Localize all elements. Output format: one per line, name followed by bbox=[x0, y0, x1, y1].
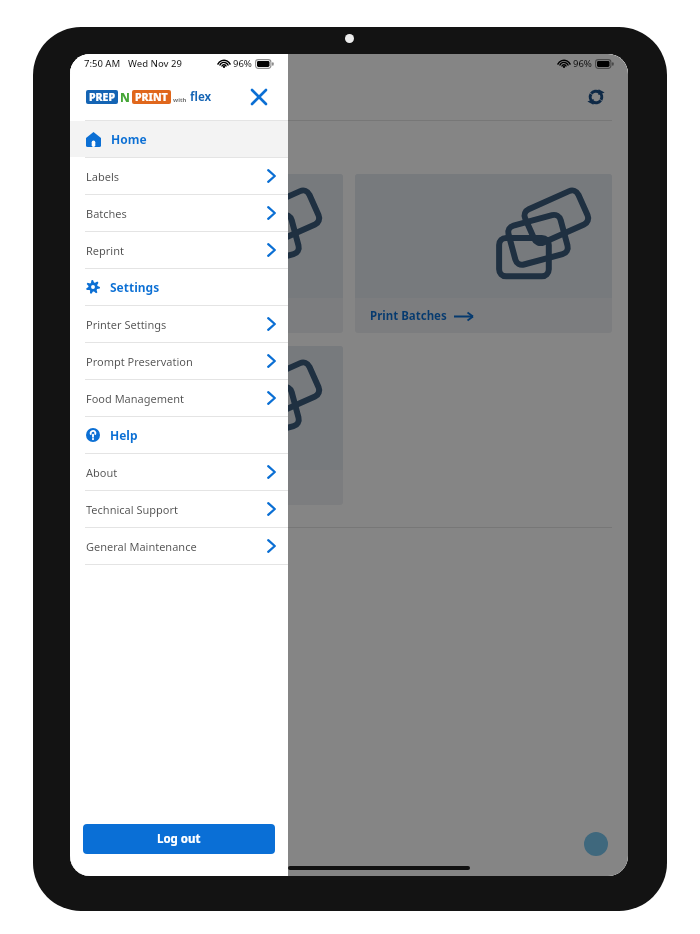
staticText: flex bbox=[190, 89, 212, 105]
staticText: N bbox=[120, 89, 130, 105]
staticText: Wed Nov 29 bbox=[128, 57, 182, 70]
staticText: Printer Settings bbox=[86, 317, 267, 332]
staticText: PREP bbox=[89, 90, 115, 104]
staticText: Reprint bbox=[86, 243, 267, 258]
button[interactable]: Prompt Preservation bbox=[70, 343, 288, 379]
button[interactable]: Printer Settings bbox=[70, 306, 288, 342]
staticText: Print Batches bbox=[370, 308, 447, 324]
button[interactable]: Refresh bbox=[580, 81, 612, 113]
staticText: Wed Nov 29 bbox=[128, 57, 182, 70]
button[interactable]: Labels bbox=[70, 158, 288, 194]
staticText: PREP bbox=[89, 90, 115, 104]
staticText: Log out bbox=[157, 831, 201, 847]
staticText: 96% bbox=[573, 57, 592, 70]
button[interactable]: Food Management bbox=[70, 380, 288, 416]
button[interactable]: Home bbox=[70, 121, 288, 157]
staticText: Labels bbox=[86, 169, 267, 184]
staticText: PRINT bbox=[135, 90, 168, 104]
staticText: Help bbox=[110, 427, 138, 443]
button[interactable]: Reprint bbox=[86, 346, 343, 505]
staticText: Batches bbox=[86, 206, 267, 221]
button[interactable]: Print Labels bbox=[86, 174, 343, 333]
button[interactable]: Help bbox=[70, 417, 288, 453]
button[interactable]: Reprint bbox=[70, 232, 288, 268]
staticText: flex bbox=[190, 89, 212, 105]
staticText: Reprint bbox=[101, 480, 144, 496]
staticText: About bbox=[86, 465, 267, 480]
staticText: Prompt Preservation bbox=[86, 354, 267, 369]
staticText: Home bbox=[111, 131, 147, 147]
button[interactable]: Close menu bbox=[244, 82, 274, 112]
button[interactable]: General Maintenance bbox=[70, 528, 288, 564]
staticText: Print Labels bbox=[101, 308, 169, 324]
staticText: 7:50 AM bbox=[84, 57, 121, 70]
button[interactable]: Batches bbox=[70, 195, 288, 231]
staticText: Settings bbox=[110, 279, 160, 295]
button[interactable]: About bbox=[70, 454, 288, 490]
staticText: Food Management bbox=[86, 391, 267, 406]
staticText: with bbox=[173, 96, 187, 104]
staticText: 96% bbox=[233, 57, 252, 70]
staticText: 7:50 AM bbox=[84, 57, 121, 70]
button[interactable]: Technical Support bbox=[70, 491, 288, 527]
button[interactable]: Settings bbox=[70, 269, 288, 305]
button[interactable]: Log out bbox=[83, 824, 275, 854]
staticText: PRINT bbox=[135, 90, 168, 104]
staticText: General Maintenance bbox=[86, 539, 267, 554]
staticText: Technical Support bbox=[86, 502, 267, 517]
staticText: with bbox=[173, 96, 187, 104]
staticText: N bbox=[120, 89, 130, 105]
button[interactable]: Print Batches bbox=[355, 174, 612, 333]
